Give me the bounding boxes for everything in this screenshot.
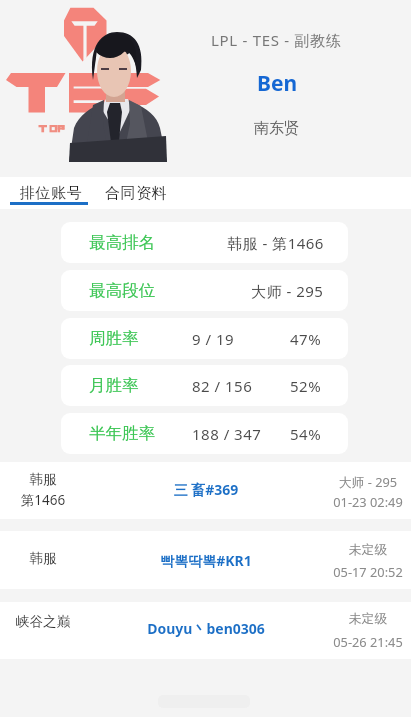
staticText: 188 / 347 bbox=[192, 424, 262, 444]
button[interactable]: 韩服 bbox=[0, 462, 411, 519]
staticText: 韩服 bbox=[0, 471, 123, 488]
staticText: 月胜率 bbox=[89, 375, 139, 396]
staticText: 最高段位 bbox=[89, 280, 155, 301]
staticText: 韩服 bbox=[0, 550, 123, 567]
staticText: 未定级 bbox=[288, 542, 411, 558]
staticText: 峡谷之巅 bbox=[0, 613, 123, 630]
staticText: 三 畜#369 bbox=[86, 480, 326, 499]
staticText: 大师 - 295 bbox=[288, 473, 411, 490]
staticText: Ben bbox=[257, 69, 298, 98]
staticText: 未定级 bbox=[288, 611, 411, 627]
button[interactable]: 最高段位 bbox=[61, 270, 348, 311]
staticText: 54% bbox=[290, 424, 322, 444]
staticText: 52% bbox=[290, 376, 322, 396]
staticText: 韩服 - 第1466 bbox=[227, 233, 324, 253]
staticText: 合同资料 bbox=[105, 184, 168, 203]
button[interactable]: 合同资料 bbox=[94, 177, 178, 209]
staticText: 05-26 21:45 bbox=[288, 633, 411, 650]
staticText: 半年胜率 bbox=[89, 423, 155, 444]
staticText: Douyu丶ben0306 bbox=[86, 619, 326, 638]
staticText: 周胜率 bbox=[89, 328, 139, 349]
button[interactable]: 排位账号 bbox=[10, 177, 92, 209]
staticText: 第1466 bbox=[0, 491, 123, 509]
staticText: LPL - TES - 副教练 bbox=[211, 30, 342, 50]
button[interactable]: 韩服 bbox=[0, 531, 411, 589]
staticText: 最高排名 bbox=[89, 232, 155, 253]
button[interactable]: 月胜率 bbox=[61, 365, 348, 406]
staticText: 빡뽁딱뽁#KR1 bbox=[86, 551, 326, 570]
staticText: 47% bbox=[290, 329, 322, 349]
staticText: 82 / 156 bbox=[192, 376, 253, 396]
staticText: 南东贤 bbox=[254, 119, 299, 138]
button[interactable]: 周胜率 bbox=[61, 318, 348, 359]
button[interactable]: 半年胜率 bbox=[61, 413, 348, 454]
staticText: 大师 - 295 bbox=[251, 281, 324, 301]
staticText: 9 / 19 bbox=[192, 329, 235, 349]
staticText: 01-23 02:49 bbox=[288, 493, 411, 510]
button[interactable]: 峡谷之巅 bbox=[0, 602, 411, 659]
staticText: 05-17 20:52 bbox=[288, 563, 411, 580]
staticText: 排位账号 bbox=[20, 184, 83, 203]
button[interactable]: 最高排名 bbox=[61, 222, 348, 263]
